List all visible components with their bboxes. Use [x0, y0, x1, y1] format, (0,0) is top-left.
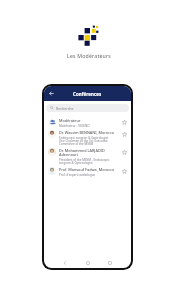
button[interactable]: Dr. Wassim BENNANI, Morocco [44, 129, 131, 147]
button[interactable]: Modérateur [44, 117, 131, 129]
button[interactable]: Back [61, 259, 69, 267]
staticText: Prof. d'expert cardiologue [59, 173, 96, 177]
staticText: President of the MSSM - Endoscopic surge… [59, 158, 110, 165]
button[interactable]: Home [84, 259, 92, 267]
button[interactable]: Recents [106, 259, 114, 267]
button[interactable]: Favorite [121, 168, 128, 175]
button[interactable]: Favorite [121, 131, 128, 138]
button[interactable]: Prof. Mansouf Fadwa, Morocco [44, 166, 131, 178]
staticText: Modérateur - VIGENO [59, 124, 90, 128]
staticText: Conférences [73, 91, 102, 97]
button[interactable]: Favorite [121, 149, 128, 156]
staticText: Dr. Wassim BENNANI, Morocco [59, 130, 115, 135]
staticText: Les Modérateurs [67, 52, 112, 59]
staticText: Recherche [56, 106, 74, 111]
button[interactable]: Favorite [121, 119, 128, 126]
button[interactable]: Dr. Mohammed LARJADID Adennouri [44, 147, 131, 166]
button[interactable]: Back [46, 88, 57, 99]
staticText: Modérateur [59, 118, 81, 123]
staticText: Dr. Mohammed LARJADID Adennouri [59, 148, 119, 157]
staticText: Prof. Mansouf Fadwa, Morocco [59, 167, 115, 172]
staticText: Endoscopic surgeon & Gastrologist Vice C… [59, 136, 109, 146]
button[interactable]: Recherche [46, 104, 129, 112]
